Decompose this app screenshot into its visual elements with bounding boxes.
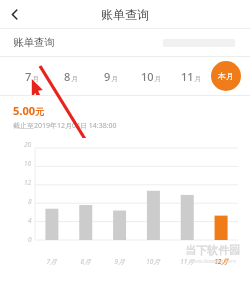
staticText: 月 [154, 74, 161, 83]
staticText: 账单查询 [13, 36, 55, 49]
staticText: 4 [28, 216, 32, 225]
staticText: 9月 [114, 257, 125, 266]
staticText: 8 [64, 69, 71, 84]
staticText: 0 [28, 235, 32, 244]
staticText: 当下软件园 [185, 243, 240, 257]
staticText: 8月 [80, 257, 91, 266]
staticText: 11月 [180, 257, 194, 266]
staticText: 20 [24, 140, 32, 149]
button[interactable]: 10 [131, 57, 171, 95]
staticText: 账单查询 [101, 7, 149, 22]
staticText: 本月 [218, 71, 234, 81]
staticText: 11 [181, 69, 194, 84]
staticText: 5.00 [13, 103, 35, 118]
staticText: 截止至2019年12月04日 14:38:00 [13, 121, 117, 131]
staticText: 7月 [46, 257, 57, 266]
staticText: 9 [104, 69, 111, 84]
staticText: 8 [28, 197, 32, 206]
staticText: 月 [194, 74, 201, 83]
staticText: 12 [24, 178, 32, 187]
staticText: 元 [35, 106, 44, 117]
staticText: www.downza.com [189, 257, 236, 264]
staticText: 7 [25, 69, 32, 84]
staticText: 16 [24, 159, 32, 168]
button[interactable]: 9 [91, 57, 131, 95]
staticText: 月 [32, 74, 39, 83]
button[interactable]: 11 [171, 57, 211, 95]
staticText: 10 [141, 69, 154, 84]
button[interactable]: 8 [51, 57, 91, 95]
button[interactable]: 本月 [211, 61, 241, 91]
staticText: 月 [111, 74, 118, 83]
staticText: 12月 [214, 257, 228, 266]
staticText: 月 [71, 74, 78, 83]
button[interactable]: Back [0, 0, 28, 28]
button[interactable]: 7 [12, 57, 51, 95]
staticText: 10月 [146, 257, 160, 266]
